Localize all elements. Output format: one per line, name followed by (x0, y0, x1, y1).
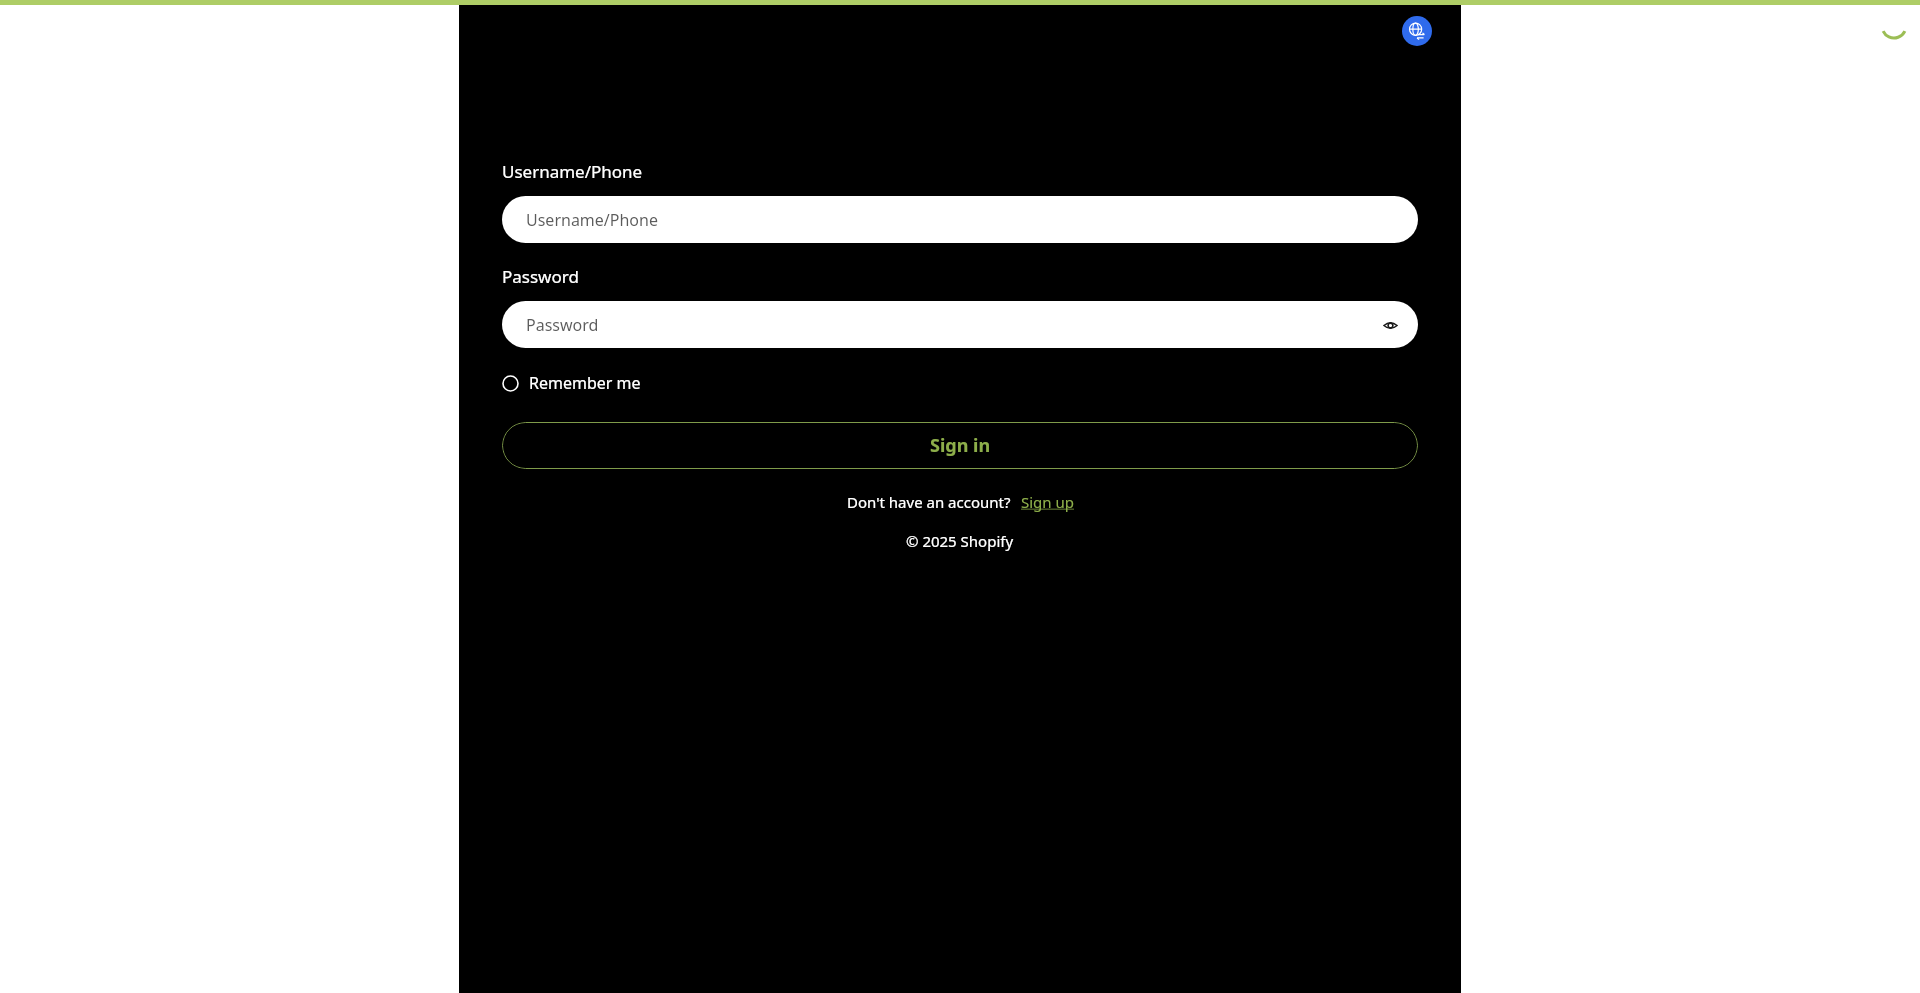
staticText: Password (526, 314, 599, 336)
button[interactable]: Username/Phone (502, 196, 1418, 243)
staticText: Password (502, 265, 579, 288)
staticText: Username/Phone (526, 209, 658, 231)
staticText: Remember me (529, 372, 641, 394)
button[interactable]: Remember me (502, 368, 641, 398)
button[interactable]: Password (502, 301, 1418, 348)
button[interactable]: Change language (1402, 16, 1432, 46)
staticText: Sign in (930, 433, 991, 458)
button[interactable]: Sign up (1021, 492, 1074, 512)
staticText: Sign up (1021, 492, 1074, 512)
staticText: Don't have an account? (847, 492, 1011, 512)
staticText: Username/Phone (502, 160, 643, 183)
button[interactable]: Sign in (502, 422, 1418, 469)
button[interactable]: Show password (1378, 313, 1402, 337)
staticText: © 2025 Shopify (906, 531, 1014, 551)
